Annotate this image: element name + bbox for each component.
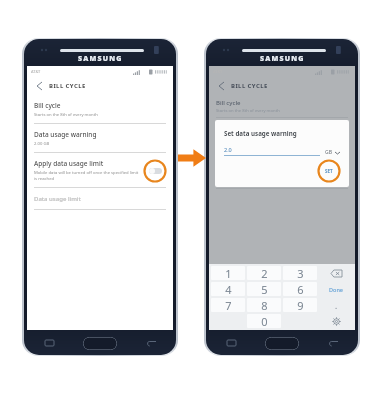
staticText: 2.00 GB [34,141,50,147]
button[interactable]: 3 [283,266,317,280]
staticText: 9 [297,298,304,312]
button[interactable]: Recent apps [42,336,56,350]
button[interactable]: 7 [211,298,245,312]
staticText: BILL CYCLE [49,82,86,90]
button[interactable]: Set [318,160,340,182]
staticText: GB [325,149,332,156]
button[interactable]: 4 [211,282,245,296]
button[interactable]: Bill cycle [27,95,173,124]
button[interactable]: Decimal point [319,298,353,312]
staticText: . [335,300,338,311]
button[interactable]: Home [83,337,117,350]
staticText: 6 [297,282,304,296]
button[interactable]: 6 [283,282,317,296]
staticText: Data usage limit [34,195,81,203]
staticText: Done [329,286,343,293]
staticText: 1 [225,266,232,280]
button[interactable]: 5 [247,282,281,296]
button[interactable]: 9 [283,298,317,312]
staticText: BILL CYCLE [231,82,268,90]
button[interactable]: Apply data usage limit toggle [144,160,166,182]
button[interactable]: Back [326,336,340,350]
button[interactable]: Done [319,282,353,296]
staticText: 8 [261,298,268,312]
staticText: SET [325,168,333,174]
button[interactable]: Data usage warning [27,124,173,153]
button[interactable]: 2 [247,266,281,280]
button[interactable]: Keyboard settings [319,314,353,328]
staticText: Starts on the 8th of every month [34,112,98,118]
staticText: Set data usage warning [224,129,297,137]
button[interactable]: 8 [247,298,281,312]
button[interactable]: Delete [319,266,353,280]
button[interactable]: Apply data usage limit [27,153,173,188]
staticText: 7 [225,298,232,312]
staticText: SAMSUNG [78,54,123,64]
button[interactable]: Back [144,336,158,350]
button[interactable]: 0 [247,314,281,328]
staticText: 3 [297,266,304,280]
button[interactable]: Navigate up [215,80,227,92]
staticText: 0 [261,314,268,328]
button[interactable]: Home [265,337,299,350]
staticText: 4 [225,282,232,296]
button[interactable]: Navigate up [33,80,45,92]
staticText: Starts on the 8th of every month [216,108,280,114]
staticText: Data usage warning [34,130,97,139]
button[interactable]: Recent apps [224,336,238,350]
staticText: 2 [261,266,268,280]
staticText: 5 [261,282,268,296]
staticText: 2.0 [224,146,232,153]
button[interactable]: Data usage limit [27,188,173,210]
button[interactable]: 1 [211,266,245,280]
staticText: Apply data usage limit [34,159,104,168]
staticText: SAMSUNG [260,54,305,64]
staticText: AT&T [31,69,41,74]
staticText: Bill cycle [216,99,241,107]
staticText: Bill cycle [34,101,61,110]
staticText: Mobile data will be turned off once the … [34,170,140,182]
